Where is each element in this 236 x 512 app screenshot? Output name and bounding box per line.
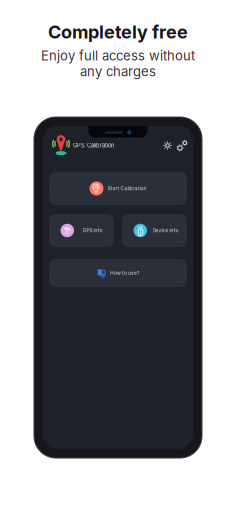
button[interactable]: How to use? [49,259,187,287]
staticText: Device info [152,228,178,233]
button[interactable]: Brightness [161,135,174,156]
button[interactable]: Start Calibration [49,172,187,205]
button[interactable]: GPS info [49,214,114,247]
staticText: How to use? [110,270,139,276]
staticText: Start Calibration [107,186,146,191]
staticText: any charges [80,64,156,79]
staticText: GPS info [82,228,102,233]
button[interactable]: Device info [122,214,187,247]
staticText: GPS Calibration [73,142,114,149]
staticText: Enjoy full access without [41,48,195,64]
staticText: Completely free [48,21,188,43]
button[interactable]: Settings [174,135,190,156]
